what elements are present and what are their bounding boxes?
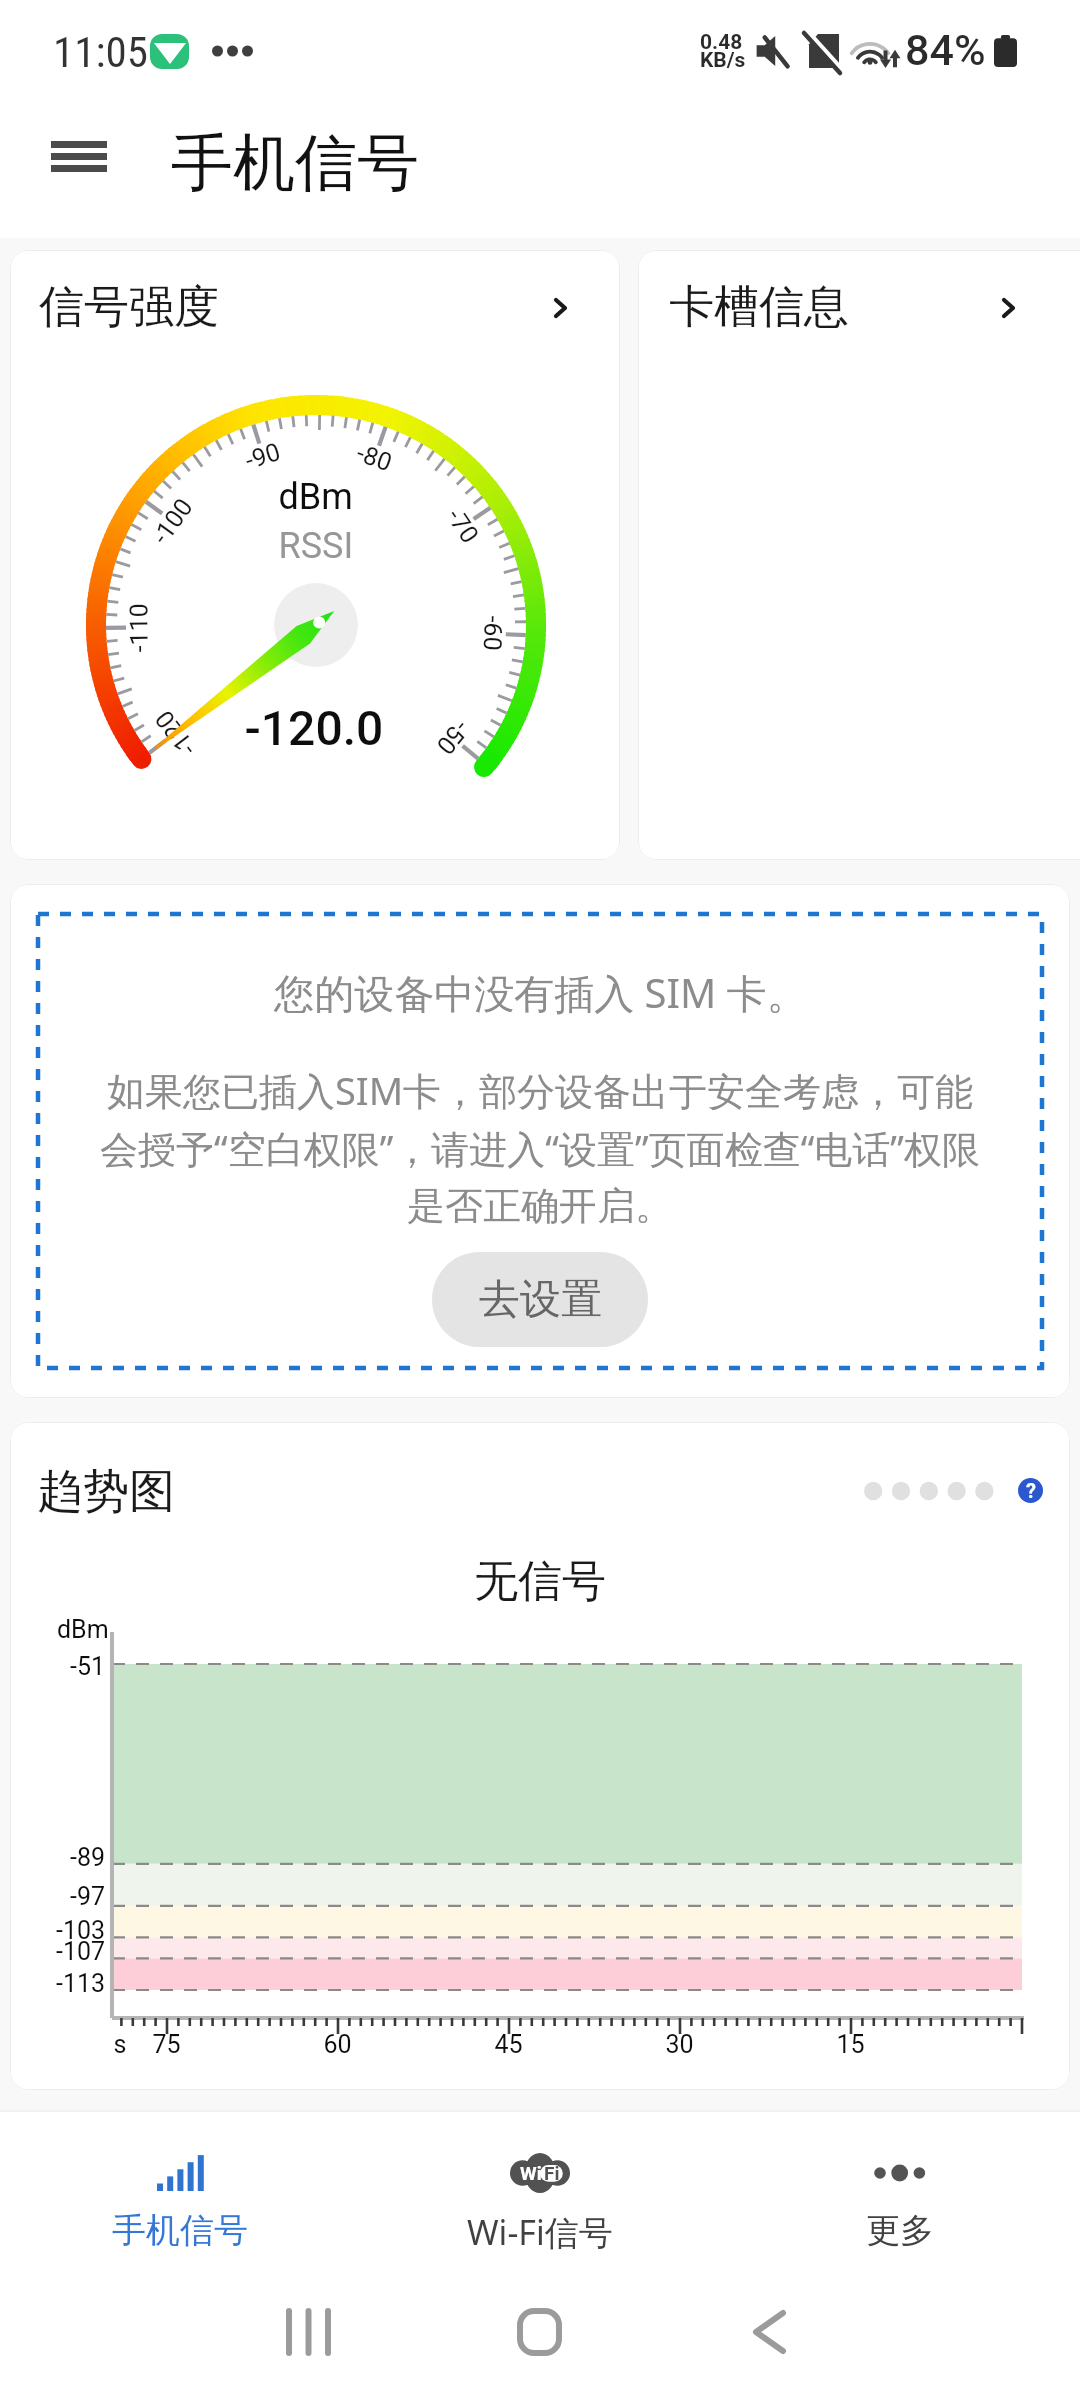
button[interactable]: Wi xyxy=(423,2137,657,2287)
button[interactable]: 去设置 xyxy=(432,1252,648,1347)
staticText: 0.48 xyxy=(700,30,743,55)
staticText: 84% xyxy=(905,25,986,75)
staticText: 11:05 xyxy=(53,27,148,77)
button[interactable]: 卡槽信息 xyxy=(638,250,1080,860)
staticText: 您的设备中没有插入 SIM 卡。 xyxy=(274,965,807,1020)
staticText: 去设置 xyxy=(479,1274,602,1326)
staticText: 手机信号 xyxy=(112,2209,248,2252)
staticText: 趋势图 xyxy=(37,1463,175,1521)
button[interactable]: Menu xyxy=(27,125,131,187)
staticText: 手机信号 xyxy=(171,124,419,202)
button[interactable]: Home xyxy=(474,2290,604,2374)
staticText: 信号强度 xyxy=(39,279,219,336)
button[interactable]: Back xyxy=(704,2290,834,2374)
staticText: Fi xyxy=(544,2162,560,2184)
button[interactable]: Recents xyxy=(243,2290,373,2374)
button[interactable]: 手机信号 xyxy=(63,2137,297,2287)
staticText: KB/s xyxy=(700,48,746,73)
button[interactable]: 更多 xyxy=(783,2137,1017,2287)
staticText: 更多 xyxy=(866,2209,934,2252)
button[interactable]: Help xyxy=(1018,1478,1043,1503)
staticText: 卡槽信息 xyxy=(669,279,849,336)
staticText: Wi xyxy=(520,2162,542,2184)
button[interactable]: 信号强度 xyxy=(10,250,620,860)
staticText: ? xyxy=(1026,1479,1036,1502)
staticText: 无信号 xyxy=(10,1554,1070,1609)
staticText: 如果您已插入SIM卡，部分设备出于安全考虑，可能会授予“空白权限”，请进入“设置… xyxy=(94,1064,986,1230)
staticText: Wi-Fi信号 xyxy=(467,2209,613,2255)
